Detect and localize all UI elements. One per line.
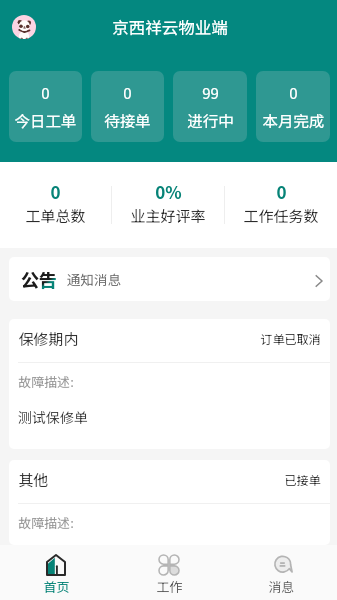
button[interactable]: 保修期内: [9, 319, 330, 449]
button[interactable]: 公告: [9, 257, 330, 301]
staticText: 工作任务数: [243, 205, 319, 227]
staticText: 订单已取消: [260, 330, 321, 347]
button[interactable]: 消息: [225, 545, 337, 600]
staticText: 0%: [155, 179, 182, 204]
staticText: 0: [123, 82, 132, 104]
staticText: 测试保修单: [18, 407, 88, 427]
button[interactable]: 0: [91, 71, 164, 142]
staticText: 消息: [268, 577, 295, 596]
staticText: 京西祥云物业端: [112, 15, 228, 39]
staticText: 其他: [18, 469, 49, 491]
staticText: 0: [276, 179, 287, 204]
staticText: 今日工单: [14, 109, 77, 131]
staticText: 进行中: [187, 109, 234, 131]
button[interactable]: Profile: [12, 15, 36, 39]
button[interactable]: 工作: [113, 545, 225, 600]
staticText: 0: [50, 179, 61, 204]
staticText: 故障描述:: [18, 372, 74, 391]
staticText: 公告: [21, 266, 57, 292]
staticText: 待接单: [104, 109, 151, 131]
staticText: 通知消息: [67, 269, 121, 289]
button[interactable]: 0: [0, 162, 111, 248]
staticText: 首页: [43, 577, 70, 596]
button[interactable]: 99: [173, 71, 247, 142]
staticText: 99: [202, 82, 219, 104]
staticText: 工单总数: [25, 205, 86, 227]
staticText: 0: [41, 82, 50, 104]
button[interactable]: 0%: [112, 162, 224, 248]
button[interactable]: 0: [256, 71, 330, 142]
button[interactable]: 0: [225, 162, 337, 248]
button[interactable]: 其他: [9, 460, 330, 545]
button[interactable]: 首页: [0, 545, 113, 600]
button[interactable]: 0: [9, 71, 82, 142]
staticText: 保修期内: [18, 328, 79, 350]
staticText: 本月完成: [262, 109, 325, 131]
staticText: 工作: [156, 577, 183, 596]
staticText: 已接单: [284, 471, 321, 488]
staticText: 0: [289, 82, 298, 104]
staticText: 故障描述:: [18, 513, 74, 532]
staticText: 业主好评率: [130, 205, 206, 227]
